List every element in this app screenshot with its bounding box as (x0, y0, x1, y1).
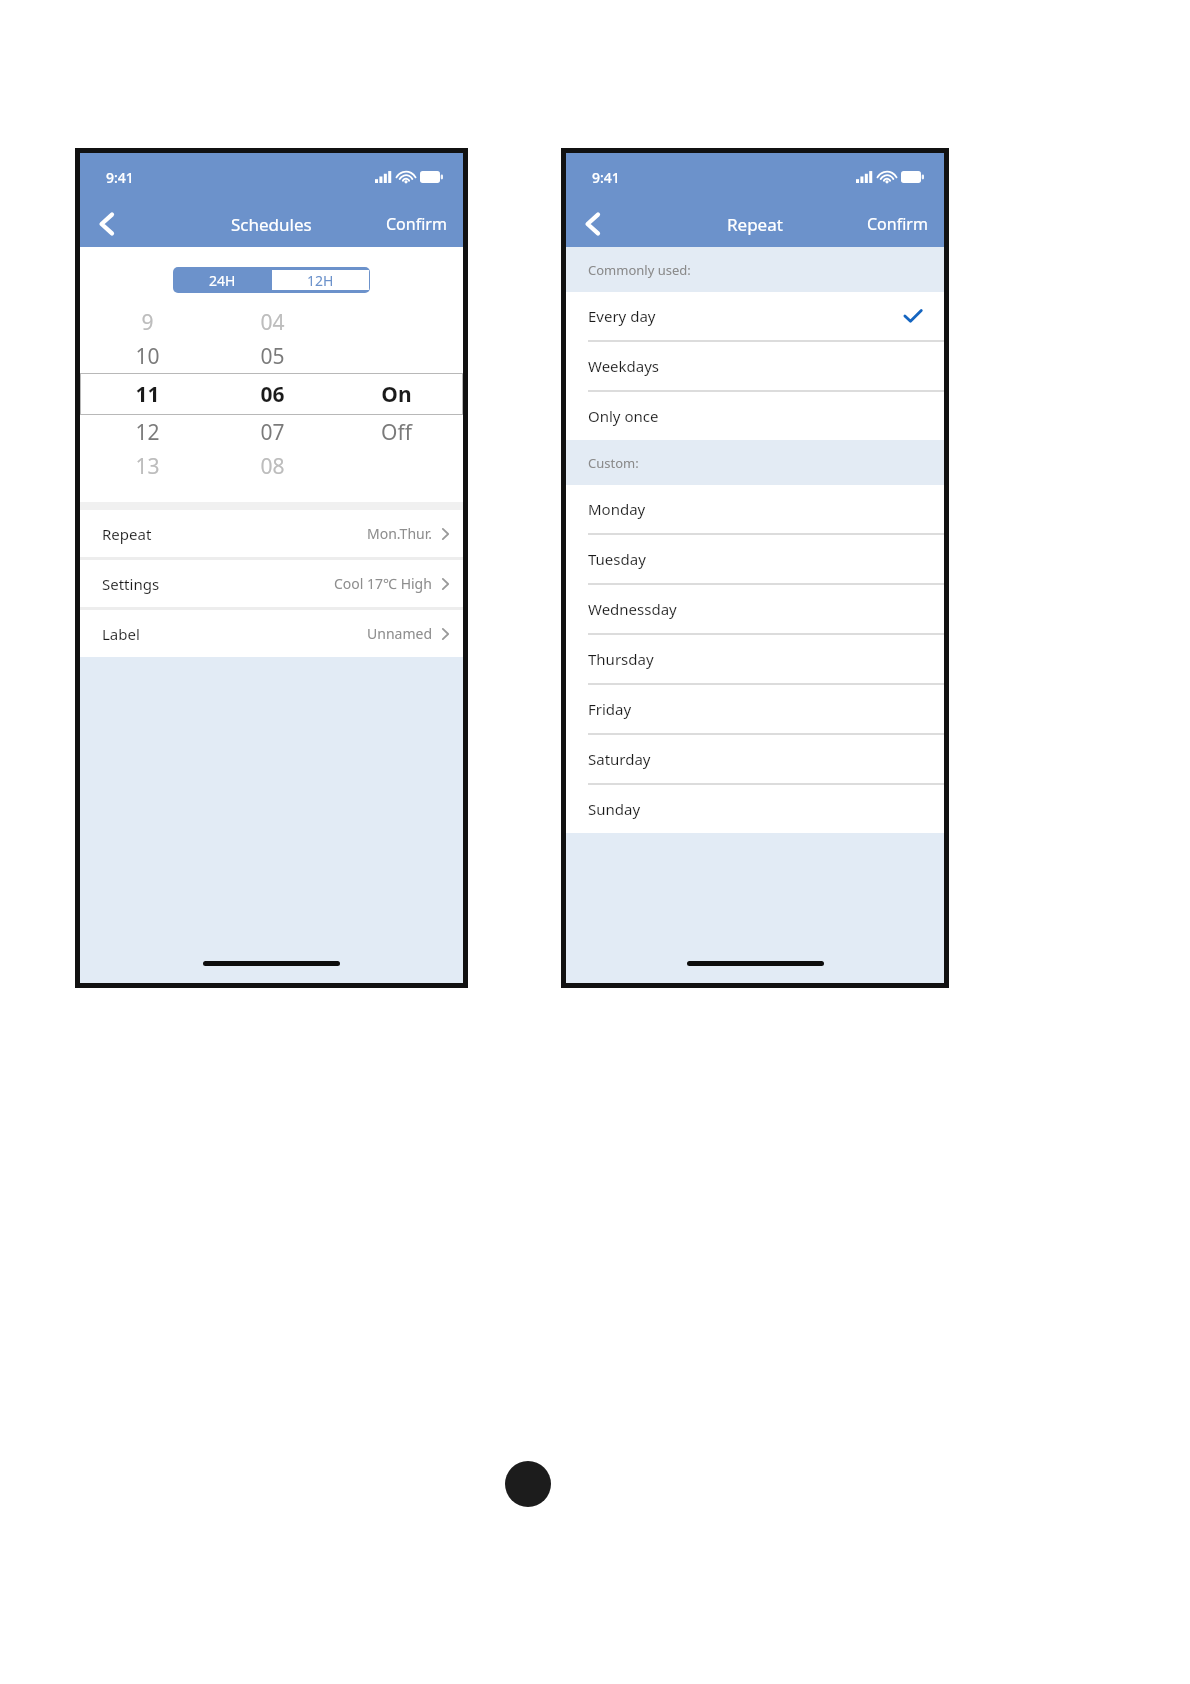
button[interactable]: 24H (173, 267, 271, 293)
staticText: Only once (588, 406, 659, 426)
staticText: Settings (102, 574, 160, 594)
staticText: 06 (260, 380, 285, 409)
staticText: Cool 17℃ High (334, 574, 432, 593)
staticText: 13 (135, 452, 160, 481)
staticText: Monday (588, 499, 646, 519)
staticText: Confirm (386, 213, 447, 235)
staticText: 24H (209, 271, 236, 290)
staticText: Label (102, 624, 140, 644)
staticText: Commonly used: (588, 261, 691, 279)
button[interactable]: 12H (272, 270, 369, 290)
staticText: 05 (260, 342, 285, 371)
staticText: Mon.Thur. (367, 524, 432, 543)
button[interactable]: Only once (566, 392, 944, 440)
button[interactable]: Confirm (851, 201, 944, 247)
button[interactable]: Back (566, 201, 618, 247)
button[interactable]: Label (80, 610, 463, 657)
staticText: Saturday (588, 749, 651, 769)
staticText: Repeat (727, 213, 783, 236)
staticText: Custom: (588, 454, 639, 472)
staticText: Repeat (102, 524, 152, 544)
staticText: Every day (588, 306, 656, 326)
button[interactable]: Wednessday (566, 585, 944, 633)
staticText: Thursday (588, 649, 654, 669)
staticText: 12 (135, 418, 160, 447)
button[interactable]: Sunday (566, 785, 944, 833)
staticText: Schedules (231, 213, 312, 236)
staticText: 9 (141, 308, 154, 337)
button[interactable]: Monday (566, 485, 944, 533)
button[interactable]: Weekdays (566, 342, 944, 390)
button[interactable]: Repeat (80, 510, 463, 557)
staticText: Confirm (867, 213, 928, 235)
button[interactable]: Back (80, 201, 132, 247)
staticText: 9:41 (106, 168, 134, 187)
button[interactable]: Every day (566, 292, 944, 340)
staticText: On (381, 380, 412, 409)
button[interactable]: Thursday (566, 635, 944, 683)
staticText: Sunday (588, 799, 641, 819)
staticText: Tuesday (588, 549, 646, 569)
staticText: Unnamed (367, 624, 432, 643)
staticText: 08 (260, 452, 285, 481)
staticText: Friday (588, 699, 632, 719)
staticText: Weekdays (588, 356, 660, 376)
button[interactable]: Settings (80, 560, 463, 607)
staticText: 07 (260, 418, 285, 447)
staticText: 12H (307, 271, 334, 290)
staticText: Off (381, 418, 412, 447)
staticText: Wednessday (588, 599, 677, 619)
button[interactable]: Saturday (566, 735, 944, 783)
button[interactable]: Tuesday (566, 535, 944, 583)
staticText: 11 (135, 380, 160, 409)
staticText: 04 (260, 308, 285, 337)
button[interactable]: Friday (566, 685, 944, 733)
staticText: 10 (135, 342, 160, 371)
staticText: 9:41 (592, 168, 620, 187)
button[interactable]: Confirm (370, 201, 463, 247)
